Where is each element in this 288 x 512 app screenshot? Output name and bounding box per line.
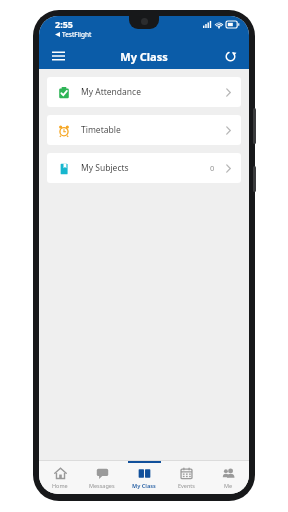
button[interactable]: My Subjects (47, 153, 241, 183)
staticText: Events (178, 482, 195, 489)
staticText: Me (224, 482, 233, 489)
button[interactable]: My Class (123, 461, 165, 494)
staticText: My Attendance (81, 86, 141, 98)
staticText: Home (52, 482, 68, 489)
staticText: 0 (210, 163, 215, 173)
staticText: My Subjects (81, 162, 129, 174)
button[interactable]: Menu (45, 43, 71, 69)
button[interactable]: Refresh (217, 43, 243, 69)
button[interactable]: Events (165, 461, 207, 494)
staticText: 2:55 (55, 18, 73, 30)
button[interactable]: Me (207, 461, 249, 494)
staticText: Timetable (81, 124, 121, 136)
staticText: My Class (132, 482, 156, 489)
staticText: Messages (89, 482, 115, 489)
button[interactable]: Messages (81, 461, 123, 494)
staticText: My Class (71, 49, 217, 64)
button[interactable]: Home (39, 461, 81, 494)
button[interactable]: Timetable (47, 115, 241, 145)
staticText: TestFlight (62, 30, 92, 39)
button[interactable]: My Attendance (47, 77, 241, 107)
